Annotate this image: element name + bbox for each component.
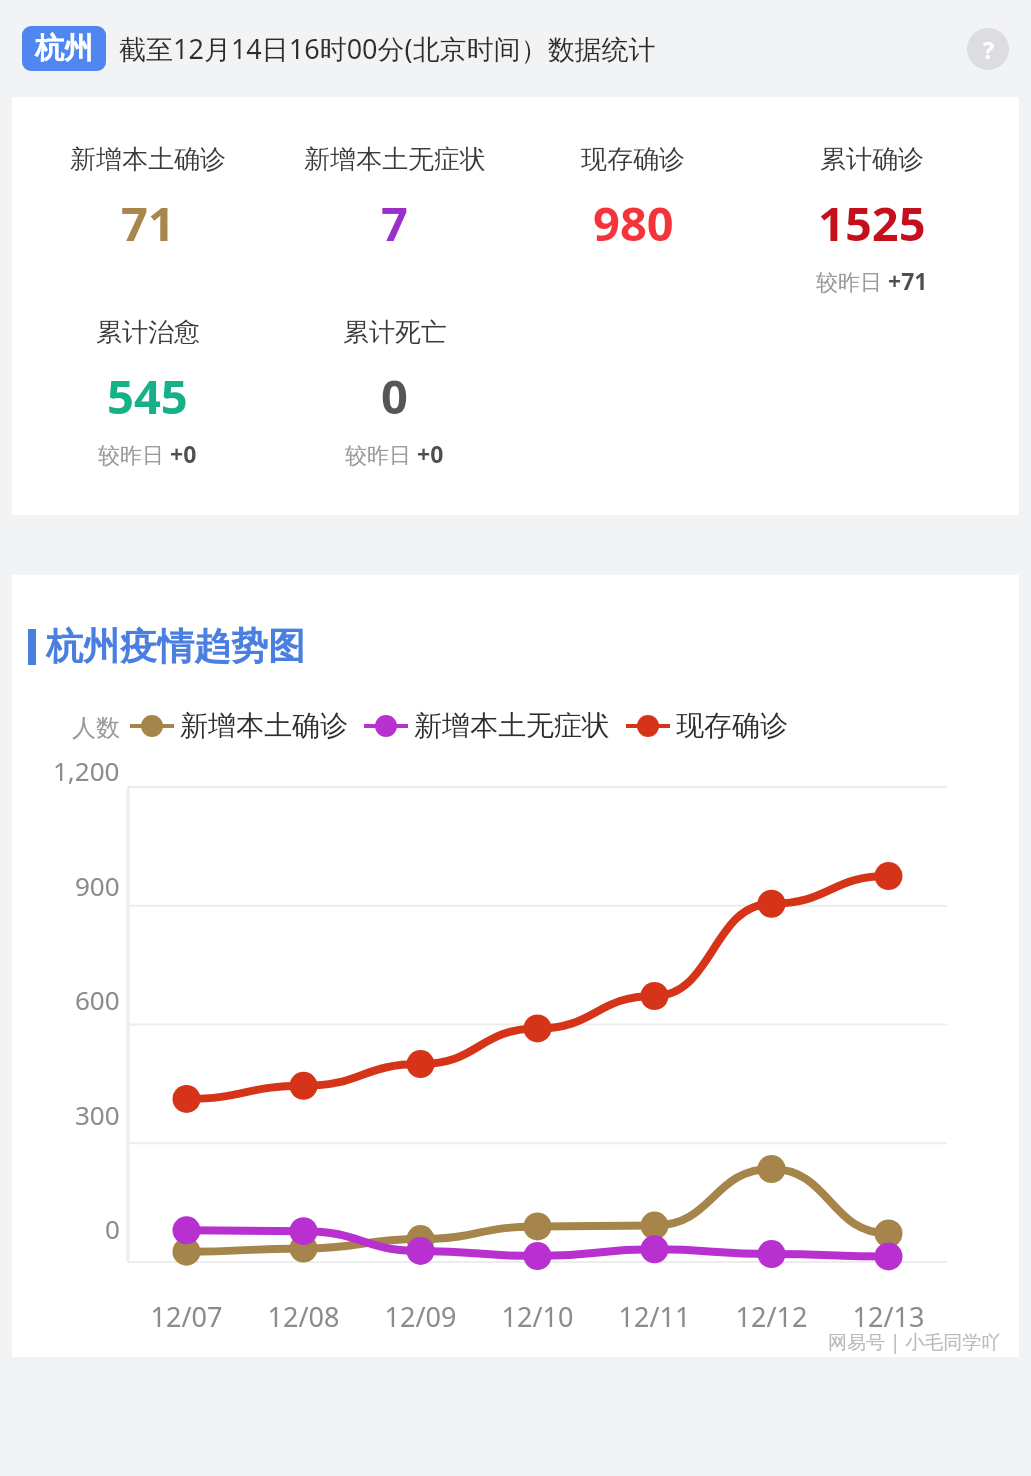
staticText: 0: [381, 364, 408, 428]
button[interactable]: 累计死亡: [271, 316, 518, 469]
staticText: +0: [417, 438, 444, 469]
staticText: 980: [593, 191, 674, 255]
staticText: 12/11: [596, 1298, 713, 1335]
button[interactable]: 新增本土确诊: [24, 143, 271, 293]
staticText: 较昨日: [816, 266, 888, 296]
staticText: 545: [107, 364, 188, 428]
button[interactable]: 累计治愈: [24, 316, 271, 469]
staticText: 1525: [818, 191, 926, 255]
staticText: 1,200: [53, 753, 120, 788]
staticText: 累计死亡: [343, 316, 447, 349]
staticText: 12/12: [713, 1298, 830, 1335]
staticText: +71: [888, 265, 928, 296]
staticText: 新增本土确诊: [70, 143, 226, 176]
staticText: 新增本土确诊: [180, 708, 348, 743]
staticText: 现存确诊: [676, 708, 788, 743]
staticText: 新增本土无症状: [304, 143, 486, 176]
staticText: 12/07: [128, 1298, 245, 1335]
button[interactable]: Help: [967, 28, 1009, 70]
staticText: 300: [75, 1097, 120, 1132]
staticText: 杭州: [35, 30, 93, 67]
button[interactable]: 现存确诊: [518, 143, 748, 293]
button[interactable]: 累计确诊: [748, 143, 995, 296]
staticText: 截至12月14日16时00分(北京时间）数据统计: [119, 30, 656, 67]
staticText: 杭州疫情趋势图: [46, 623, 305, 670]
staticText: 较昨日: [98, 439, 170, 469]
staticText: 12/08: [245, 1298, 362, 1335]
staticText: 12/13: [830, 1298, 947, 1335]
staticText: 900: [75, 868, 120, 903]
staticText: 600: [75, 982, 120, 1017]
staticText: 新增本土无症状: [414, 708, 610, 743]
button[interactable]: 新增本土确诊: [130, 708, 348, 743]
staticText: 人数: [72, 713, 120, 743]
staticText: 7: [381, 191, 408, 255]
staticText: 0: [105, 1211, 120, 1246]
button[interactable]: 杭州: [22, 26, 106, 71]
staticText: 12/09: [362, 1298, 479, 1335]
button[interactable]: 新增本土无症状: [271, 143, 518, 293]
staticText: 71: [121, 191, 175, 255]
staticText: 网易号 | 小毛同学吖: [828, 1329, 1001, 1355]
button[interactable]: 现存确诊: [626, 708, 788, 743]
staticText: +0: [170, 438, 197, 469]
staticText: ?: [983, 34, 994, 65]
button[interactable]: 杭州疫情趋势图: [28, 623, 305, 670]
staticText: 较昨日: [345, 439, 417, 469]
staticText: 累计确诊: [820, 143, 924, 176]
staticText: 现存确诊: [581, 143, 685, 176]
staticText: 累计治愈: [96, 316, 200, 349]
button[interactable]: 新增本土无症状: [364, 708, 610, 743]
staticText: 12/10: [479, 1298, 596, 1335]
